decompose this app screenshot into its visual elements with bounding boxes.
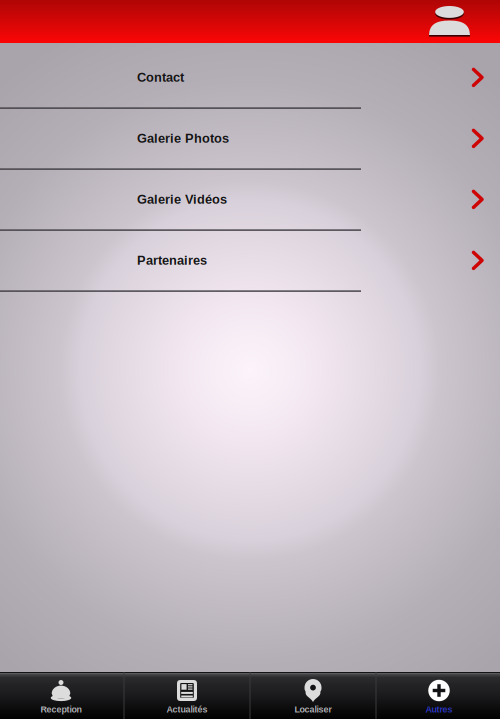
button[interactable]: Autres: [376, 672, 500, 719]
button[interactable]: Reception: [0, 672, 123, 719]
staticText: Actualités: [166, 704, 207, 714]
button[interactable]: Contact: [0, 48, 500, 109]
button[interactable]: Galerie Vidéos: [0, 170, 500, 231]
staticText: Autres: [425, 704, 452, 714]
staticText: Partenaires: [137, 253, 207, 268]
staticText: Contact: [137, 70, 184, 85]
staticText: Localiser: [294, 704, 331, 714]
button[interactable]: Actualités: [124, 672, 249, 719]
staticText: Reception: [40, 704, 81, 714]
button[interactable]: Localiser: [250, 672, 375, 719]
button[interactable]: Galerie Photos: [0, 109, 500, 170]
staticText: Galerie Photos: [137, 131, 229, 146]
button[interactable]: Account: [411, 0, 500, 43]
staticText: Galerie Vidéos: [137, 192, 227, 207]
button[interactable]: Partenaires: [0, 231, 500, 292]
